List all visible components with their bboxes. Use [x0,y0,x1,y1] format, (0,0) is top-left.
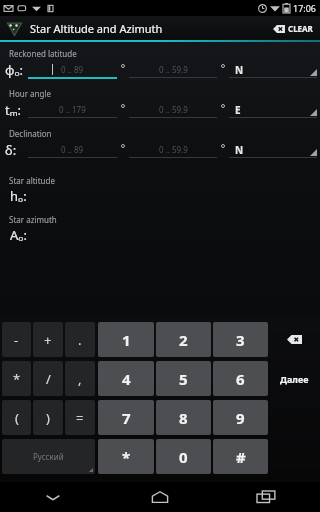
button[interactable]: 0 .. 89 [28,62,117,79]
staticText: Star Altitude and Azimuth [30,21,163,36]
button[interactable]: N [229,142,317,158]
button[interactable]: 0 .. 179 [28,102,117,118]
button[interactable]: Home [106,482,213,512]
staticText: Далее [280,373,309,385]
button[interactable]: N [229,62,317,78]
staticText: 0 [179,447,188,467]
button[interactable]: Recent apps [213,482,320,512]
staticText: + [44,331,52,349]
button[interactable]: / [33,361,63,396]
button[interactable]: Backspace [270,322,319,357]
staticText: = [76,409,84,427]
button[interactable]: 4 [98,361,154,396]
staticText: ( [15,409,19,427]
staticText: CLEAR [288,23,313,34]
button[interactable]: ) [33,400,63,435]
staticText: Русский [33,451,64,462]
staticText: / [46,370,51,388]
button[interactable]: Back [0,482,106,512]
button[interactable]: 0 .. 59.9 [129,62,217,78]
staticText: Aₒ: [10,226,27,244]
button[interactable]: 1 [98,322,154,357]
staticText: δ: [5,141,17,159]
staticText: . [78,331,82,349]
staticText: 6 [236,369,245,389]
button[interactable]: 3 [213,322,268,357]
staticText: 7 [122,408,131,428]
staticText: 8 [179,408,188,428]
staticText: 2 [179,330,188,350]
button[interactable]: 0 .. 59.9 [129,102,217,118]
staticText: 0 .. 179 [59,104,86,115]
staticText: 5 [179,369,188,389]
staticText: * [13,370,21,388]
button[interactable]: 0 [156,439,211,474]
staticText: tₘ: [5,101,22,119]
button[interactable]: CLEAR [271,21,315,36]
staticText: , [78,370,82,388]
staticText: ) [46,409,50,427]
staticText: hₒ: [10,187,27,205]
staticText: 9 [236,408,245,428]
button[interactable]: * [98,439,154,474]
button[interactable]: 9 [213,400,268,435]
staticText: 0 .. 59.9 [159,144,188,155]
staticText: 0 .. 59.9 [159,104,188,115]
staticText: 3 [236,330,245,350]
staticText: φₒ: [5,61,24,79]
staticText: E [235,103,241,117]
staticText: * [122,447,131,467]
button[interactable]: 6 [213,361,268,396]
button[interactable]: * [2,361,31,396]
button[interactable]: ( [2,400,31,435]
staticText: 0 .. 59.9 [159,64,188,75]
button[interactable]: . [65,322,95,357]
staticText: 17:06 [293,2,317,14]
button[interactable]: 0 .. 89 [28,142,117,158]
staticText: # [236,447,246,467]
button[interactable]: 0 .. 59.9 [129,142,217,158]
button[interactable]: , [65,361,95,396]
staticText: 0 .. 89 [61,64,84,75]
button[interactable]: # [213,439,268,474]
staticText: 0 .. 89 [61,144,84,155]
button[interactable]: E [229,102,317,118]
button[interactable]: Русский [2,439,95,474]
staticText: Hour angle [9,88,52,99]
staticText: Star azimuth [9,214,57,225]
button[interactable]: 8 [156,400,211,435]
staticText: N [235,63,244,77]
staticText: - [14,331,19,349]
button[interactable]: + [33,322,63,357]
staticText: Declination [9,128,52,139]
button[interactable]: Далее [270,361,319,396]
button[interactable]: = [65,400,95,435]
button[interactable]: - [2,322,31,357]
staticText: Star altitude [9,175,55,186]
staticText: Reckoned latitude [9,48,77,59]
staticText: N [235,143,244,157]
button[interactable]: 5 [156,361,211,396]
button[interactable]: 7 [98,400,154,435]
button[interactable]: 2 [156,322,211,357]
staticText: 4 [122,369,131,389]
staticText: 1 [122,330,131,350]
